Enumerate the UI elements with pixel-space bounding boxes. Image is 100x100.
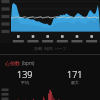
staticText: 最大: [71, 80, 79, 85]
button[interactable]: Chart legend: [0, 43, 100, 54]
button[interactable]: 171: [50, 68, 100, 85]
staticText: 心拍数: [5, 60, 20, 66]
button[interactable]: Elevation chart: [0, 0, 100, 34]
staticText: 139: [17, 68, 33, 80]
staticText: 平均: [21, 80, 29, 85]
button[interactable]: 心拍数: [0, 58, 100, 100]
staticText: 距離 時間 ペース: [34, 46, 67, 51]
other: Heart rate chart: [0, 87, 100, 100]
staticText: (bpm): [22, 60, 35, 66]
staticText: 171: [67, 68, 83, 80]
button[interactable]: 139: [0, 68, 50, 85]
